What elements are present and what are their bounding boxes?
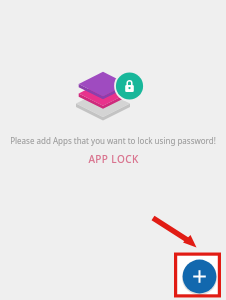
button[interactable]: Add app to lock [182, 259, 217, 294]
button[interactable]: APP LOCK [0, 152, 226, 166]
staticText: Please add Apps that you want to lock us… [10, 135, 216, 146]
staticText: APP LOCK [88, 152, 139, 166]
